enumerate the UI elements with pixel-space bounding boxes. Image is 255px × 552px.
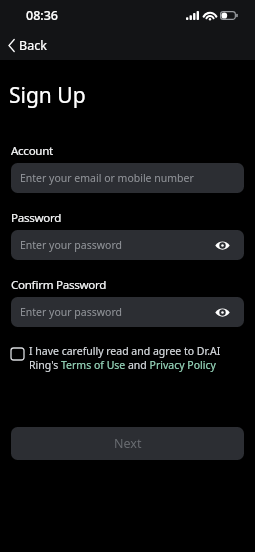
staticText: Account [11, 143, 53, 159]
staticText: I have carefully read and agree to Dr.AI… [29, 344, 244, 372]
button[interactable]: Show password [213, 236, 231, 254]
button[interactable]: Enter your email or mobile number [11, 163, 244, 193]
staticText: Sign Up [9, 81, 86, 110]
staticText: Back [19, 37, 47, 54]
staticText: Confirm Password [11, 277, 107, 293]
staticText: Enter your password [20, 305, 122, 319]
staticText: Password [11, 210, 62, 226]
staticText: 08:36 [26, 7, 59, 24]
button[interactable]: Enter your password [11, 230, 244, 260]
staticText: Enter your password [20, 238, 122, 252]
button[interactable]: Back [0, 34, 57, 57]
staticText: Enter your email or mobile number [20, 171, 194, 185]
button[interactable]: Show password [213, 303, 231, 321]
staticText: Next [114, 435, 142, 452]
button[interactable]: Enter your password [11, 297, 244, 327]
button[interactable]: I have carefully read and agree to Dr.AI… [11, 344, 244, 372]
button[interactable]: Next [11, 427, 244, 460]
